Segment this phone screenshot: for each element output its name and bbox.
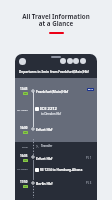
staticText: Frankfurt(Main)Hbf (36, 89, 69, 93)
button[interactable]: Action 3 (73, 58, 79, 64)
staticText: +3 (24, 185, 27, 188)
staticText: Departures in 3min from Frankfurt(Main)H… (19, 70, 89, 74)
staticText: Erfurt Hbf (36, 127, 53, 131)
staticText: ICE 2212 (40, 106, 57, 112)
button[interactable]: Action 4 (80, 58, 86, 64)
staticText: Pl. 1 (86, 156, 92, 160)
staticText: to Dresden Hbf (41, 112, 61, 116)
staticText: +3 (24, 131, 27, 134)
button[interactable]: Action 1 (60, 58, 66, 64)
button[interactable]: Action 2 (67, 58, 73, 64)
staticText: 16:05 (20, 154, 28, 158)
staticText: Pl. 4 (88, 88, 93, 91)
staticText: 5min (22, 145, 28, 148)
staticText: 16:00 (20, 126, 28, 130)
staticText: 13:45 (20, 87, 28, 91)
button[interactable]: Profile (19, 58, 26, 65)
staticText: 17:50 (20, 180, 28, 184)
staticText: Berlin Hbf (36, 181, 53, 185)
staticText: 2h 13min (17, 108, 28, 111)
staticText: Erfurt Hbf (36, 156, 53, 160)
staticText: +3 (24, 92, 27, 95)
staticText: RE 1234 to Hamburg-Altona (40, 168, 83, 172)
staticText: All Travel Information at a Glance (0, 12, 112, 28)
staticText: +3 (24, 159, 27, 162)
staticText: Pl. 3 (86, 181, 92, 185)
staticText: 1h 43min (17, 167, 28, 170)
staticText: Transfer (41, 144, 53, 148)
